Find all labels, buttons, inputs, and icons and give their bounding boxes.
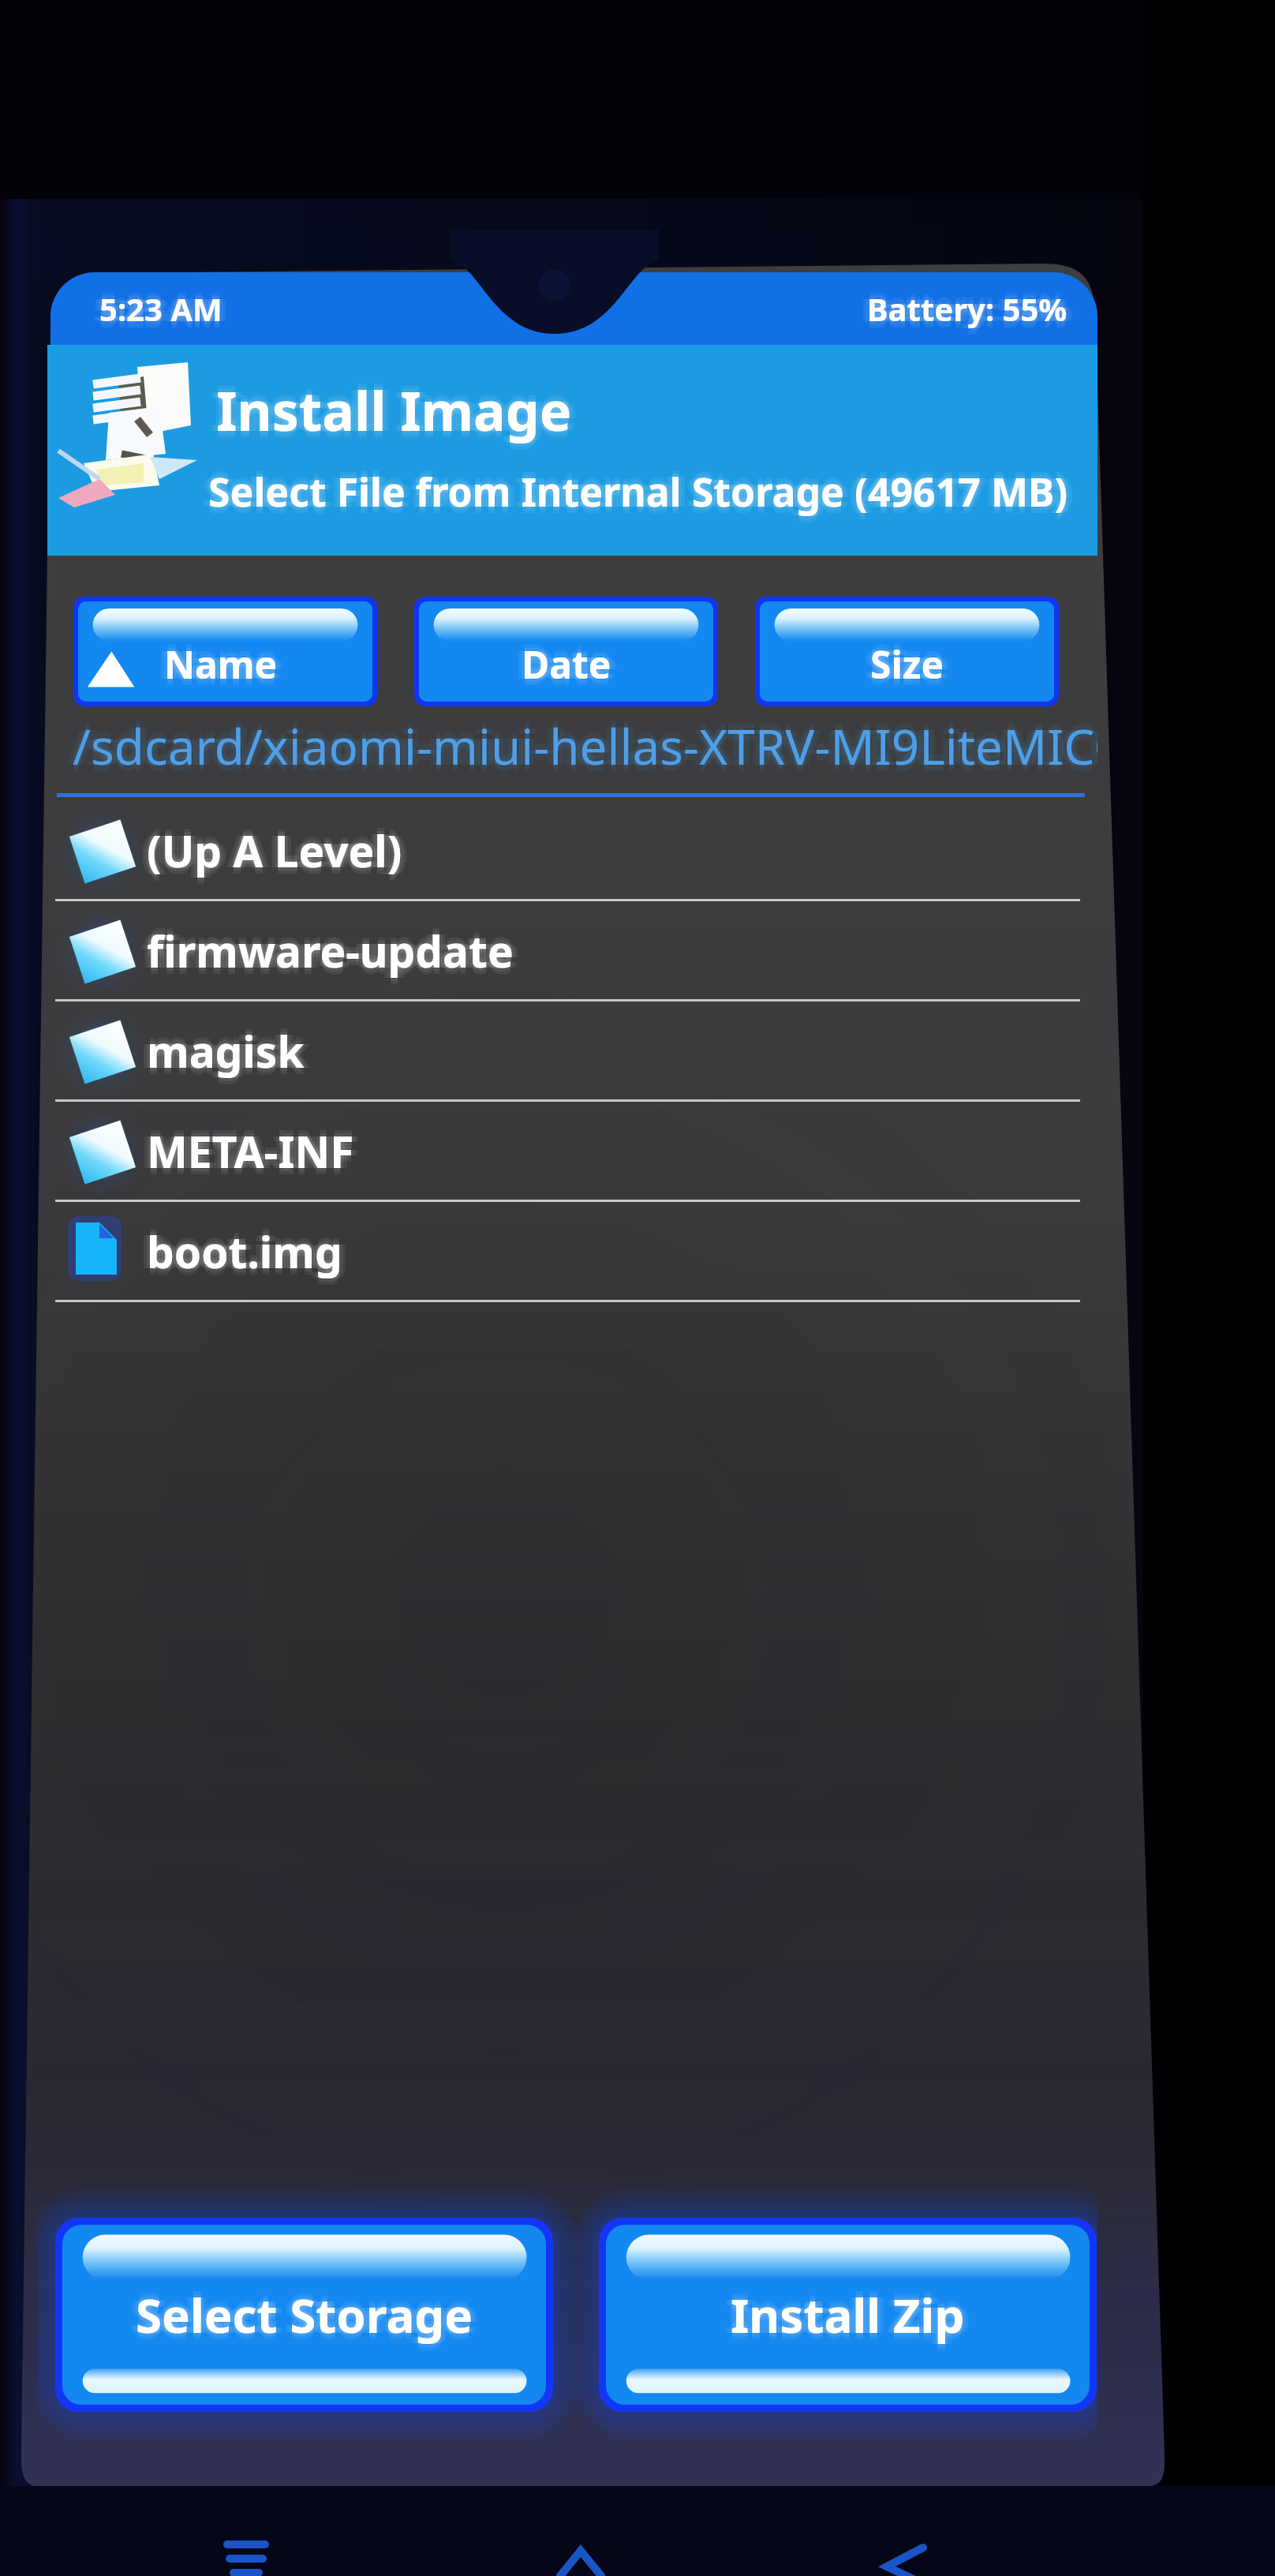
button[interactable]: Back	[866, 2510, 939, 2576]
staticText: Date	[528, 638, 618, 690]
staticText: Size	[870, 632, 944, 683]
staticText: /sdcard/xiaomi-miui-hellas-XTRV-MI9LiteM…	[73, 710, 1097, 776]
staticText: Battery: 55%	[861, 287, 1061, 330]
staticText: Date	[518, 638, 608, 690]
staticText: Install Zip	[731, 2286, 965, 2350]
staticText: magisk	[153, 1021, 311, 1080]
button[interactable]: Home	[544, 2510, 617, 2576]
staticText: /sdcard/xiaomi-miui-hellas-XTRV-MI9LiteM…	[73, 706, 1097, 773]
staticText: Install Zip	[727, 2282, 962, 2347]
staticText: Battery: 55%	[867, 294, 1067, 336]
staticText: Name	[164, 632, 278, 683]
staticText: /sdcard/xiaomi-miui-hellas-XTRV-MI9LiteM…	[66, 713, 1097, 779]
button[interactable]: Date	[419, 601, 713, 702]
staticText: 5:23 AM	[99, 294, 222, 336]
staticText: Install Image	[216, 373, 572, 447]
staticText: Battery: 55%	[870, 287, 1071, 330]
staticText: Date	[522, 638, 611, 690]
staticText: (Up A Level)	[147, 824, 402, 883]
button[interactable]: Install Zip	[606, 2225, 1090, 2405]
staticText: META-INF	[150, 1121, 357, 1181]
button[interactable]: Name	[78, 601, 372, 702]
staticText: firmware-update	[150, 921, 517, 980]
staticText: Install Zip	[731, 2289, 965, 2353]
staticText: Battery: 55%	[873, 287, 1074, 330]
staticText: Date	[515, 638, 605, 690]
staticText: Install Image	[213, 373, 569, 447]
staticText: firmware-update	[144, 921, 510, 980]
button[interactable]: Recent apps	[210, 2510, 282, 2576]
staticText: Select Storage	[129, 2282, 467, 2347]
staticText: firmware-update	[147, 924, 514, 983]
button[interactable]: META-INF	[36, 1102, 1097, 1202]
staticText: Install Image	[216, 370, 572, 444]
staticText: /sdcard/xiaomi-miui-hellas-XTRV-MI9LiteM…	[73, 719, 1097, 785]
staticText: Size	[877, 638, 951, 690]
staticText: Install Zip	[737, 2282, 971, 2347]
staticText: META-INF	[147, 1115, 354, 1174]
staticText: Select Storage	[133, 2282, 470, 2347]
staticText: (Up A Level)	[147, 814, 402, 874]
staticText: 5:23 AM	[103, 287, 226, 330]
button[interactable]: Size	[760, 601, 1054, 702]
staticText: Select File from Internal Storage (49617…	[202, 465, 1062, 519]
button[interactable]: firmware-update	[36, 901, 1097, 1002]
staticText: Select Storage	[136, 2289, 473, 2353]
staticText: Size	[873, 638, 948, 690]
staticText: META-INF	[147, 1125, 354, 1184]
staticText: boot.img	[147, 1219, 342, 1278]
staticText: Date	[522, 635, 611, 687]
staticText: magisk	[147, 1015, 305, 1074]
staticText: Select File from Internal Storage (49617…	[208, 471, 1068, 525]
staticText: firmware-update	[147, 915, 514, 974]
staticText: Select Storage	[136, 2279, 473, 2344]
staticText: Size	[864, 638, 938, 690]
staticText: Battery: 55%	[867, 284, 1067, 327]
staticText: Install Zip	[724, 2282, 959, 2347]
staticText: boot.img	[147, 1228, 342, 1287]
staticText: /sdcard/xiaomi-miui-hellas-XTRV-MI9LiteM…	[79, 713, 1097, 779]
staticText: Name	[164, 635, 278, 687]
button[interactable]: (Up A Level)	[36, 801, 1097, 901]
staticText: Install Zip	[731, 2276, 965, 2341]
staticText: firmware-update	[140, 921, 507, 980]
staticText: (Up A Level)	[147, 827, 402, 886]
staticText: Install Zip	[734, 2282, 968, 2347]
staticText: Install Image	[216, 367, 572, 440]
staticText: 5:23 AM	[93, 287, 216, 330]
staticText: magisk	[147, 1021, 305, 1080]
staticText: firmware-update	[147, 927, 514, 987]
button[interactable]: boot.img	[36, 1202, 1097, 1302]
button[interactable]: magisk	[36, 1002, 1097, 1102]
staticText: /sdcard/xiaomi-miui-hellas-XTRV-MI9LiteM…	[69, 713, 1097, 779]
staticText: META-INF	[147, 1121, 354, 1181]
staticText: magisk	[150, 1021, 308, 1080]
staticText: Select Storage	[142, 2282, 480, 2347]
staticText: Select File from Internal Storage (49617…	[205, 465, 1065, 519]
staticText: Size	[870, 638, 944, 690]
staticText: Battery: 55%	[867, 287, 1067, 330]
staticText: magisk	[147, 1028, 305, 1087]
staticText: boot.img	[153, 1222, 349, 1281]
staticText: META-INF	[153, 1121, 361, 1181]
staticText: 5:23 AM	[99, 287, 222, 330]
staticText: Select Storage	[136, 2276, 473, 2341]
staticText: Battery: 55%	[867, 290, 1067, 333]
staticText: (Up A Level)	[153, 821, 409, 880]
staticText: Date	[525, 638, 615, 690]
staticText: magisk	[140, 1021, 298, 1080]
staticText: firmware-update	[147, 921, 514, 980]
staticText: Install Image	[210, 373, 566, 447]
staticText: Select Storage	[139, 2282, 477, 2347]
staticText: META-INF	[140, 1121, 348, 1181]
staticText: Name	[164, 638, 278, 690]
staticText: Select Storage	[136, 2286, 473, 2350]
staticText: Size	[870, 645, 944, 696]
staticText: Name	[170, 638, 284, 690]
staticText: Install Image	[216, 376, 572, 450]
staticText: (Up A Level)	[140, 821, 396, 880]
button[interactable]: Select Storage	[62, 2225, 546, 2405]
staticText: boot.img	[147, 1225, 342, 1284]
staticText: 5:23 AM	[99, 290, 222, 333]
staticText: Name	[161, 638, 275, 690]
